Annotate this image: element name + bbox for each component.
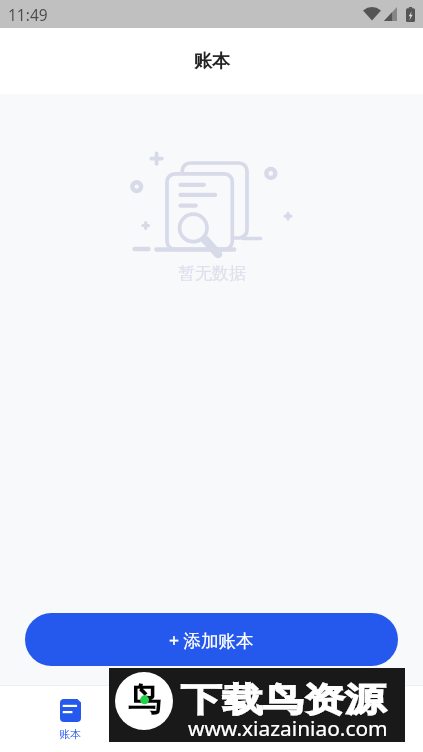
button[interactable]: + 添加账本 [25,613,398,666]
other: Wi-Fi [363,3,381,23]
other: Battery charging [406,7,415,22]
staticText: www.xiazainiao.com [188,716,388,742]
other: Mobile signal [384,7,397,21]
staticText: 鸟 [128,679,161,721]
staticText: 暂无数据 [178,263,246,284]
staticText: + 添加账本 [169,628,254,652]
staticText: 账本 [194,50,230,73]
staticText: 账本 [59,727,81,741]
staticText: 下载鸟资源 [181,679,386,721]
staticText: 11:49 [8,4,48,25]
button[interactable]: 账本 [38,686,102,752]
